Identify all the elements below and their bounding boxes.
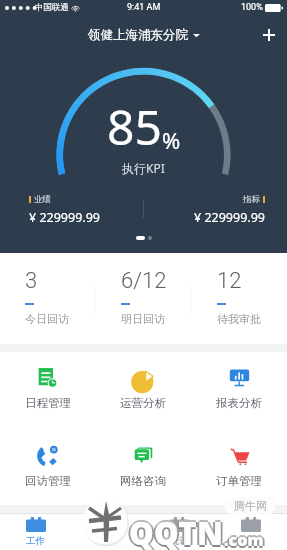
- button[interactable]: 运营分析: [95, 352, 191, 430]
- staticText: 12: [217, 268, 242, 294]
- staticText: .com: [224, 531, 264, 550]
- staticText: 回访管理: [25, 474, 71, 488]
- staticText: 日程管理: [25, 396, 71, 410]
- button[interactable]: Add: [251, 18, 287, 51]
- button[interactable]: 客户: [71, 514, 143, 550]
- staticText: .com: [224, 529, 264, 550]
- staticText: 业绩: [34, 194, 51, 205]
- staticText: 报表分析: [216, 396, 262, 410]
- staticText: 工作: [26, 535, 45, 547]
- button[interactable]: 3: [0, 253, 95, 344]
- button[interactable]: 领健上海浦东分院: [88, 27, 200, 43]
- staticText: QQTN: [129, 512, 224, 550]
- staticText: 运营分析: [120, 396, 166, 410]
- staticText: 我的: [242, 535, 261, 547]
- staticText: .com: [226, 529, 266, 550]
- staticText: %: [162, 125, 181, 155]
- staticText: 待我审批: [217, 312, 261, 326]
- button[interactable]: 日程管理: [0, 352, 95, 430]
- staticText: 腾牛网: [234, 499, 267, 513]
- staticText: QQTN: [127, 512, 222, 550]
- staticText: 网络咨询: [120, 474, 166, 488]
- staticText: 今日回访: [25, 312, 69, 326]
- staticText: ¥ 229999.99: [29, 209, 100, 226]
- staticText: 6/12: [121, 268, 167, 294]
- staticText: 领健上海浦东分院: [88, 27, 188, 43]
- staticText: .com: [222, 529, 262, 550]
- staticText: 85: [107, 94, 162, 159]
- staticText: 执行KPI: [122, 160, 165, 176]
- staticText: QQTN: [129, 510, 224, 550]
- button[interactable]: 12: [192, 253, 287, 344]
- staticText: .com: [224, 527, 264, 549]
- staticText: 明日回访: [121, 312, 165, 326]
- button[interactable]: 报表分析: [191, 352, 287, 430]
- staticText: 指标: [243, 194, 260, 205]
- staticText: 9:41 AM: [127, 2, 161, 13]
- staticText: 中国联通: [35, 2, 69, 13]
- button[interactable]: 回访管理: [0, 430, 95, 505]
- staticText: QQTN: [131, 512, 226, 550]
- staticText: QQTN: [129, 514, 224, 550]
- button[interactable]: 订单管理: [191, 430, 287, 505]
- staticText: 3: [25, 268, 38, 294]
- button[interactable]: 网络咨询: [95, 430, 191, 505]
- button[interactable]: 统计: [143, 514, 215, 550]
- staticText: 100%: [241, 2, 263, 13]
- staticText: ¥ 229999.99: [194, 209, 265, 226]
- staticText: 客户: [98, 535, 117, 547]
- button[interactable]: 工作: [0, 514, 71, 550]
- staticText: 订单管理: [216, 474, 262, 488]
- staticText: 统计: [170, 535, 189, 547]
- button[interactable]: 我的: [215, 514, 287, 550]
- button[interactable]: 6/12: [96, 253, 191, 344]
